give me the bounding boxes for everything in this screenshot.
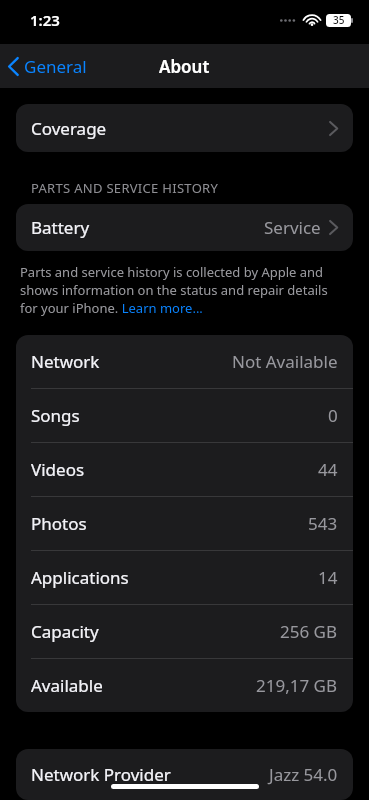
button[interactable]: Available: [16, 659, 353, 712]
staticText: 256 GB: [280, 620, 338, 643]
staticText: General: [24, 55, 87, 78]
button[interactable]: General: [0, 44, 95, 88]
button[interactable]: Network Provider: [16, 749, 353, 800]
staticText: Available: [31, 674, 103, 697]
staticText: About: [159, 55, 210, 78]
staticText: 0: [328, 404, 338, 427]
button[interactable]: Applications: [16, 551, 353, 604]
button[interactable]: Photos: [16, 497, 353, 550]
staticText: 543: [308, 512, 338, 535]
staticText: Capacity: [31, 620, 99, 643]
staticText: 35: [333, 13, 345, 27]
button[interactable]: Videos: [16, 443, 353, 496]
staticText: Photos: [31, 512, 87, 535]
staticText: 44: [318, 458, 338, 481]
staticText: Songs: [31, 404, 80, 427]
staticText: 219,17 GB: [256, 674, 338, 697]
button[interactable]: Coverage: [16, 104, 353, 152]
staticText: Parts and service history is collected b…: [20, 263, 347, 317]
button[interactable]: Capacity: [16, 605, 353, 658]
button[interactable]: Battery: [16, 204, 353, 251]
staticText: Not Available: [232, 350, 338, 373]
staticText: Videos: [31, 458, 85, 481]
staticText: 14: [318, 566, 338, 589]
staticText: PARTS AND SERVICE HISTORY: [31, 179, 219, 197]
staticText: Network Provider: [31, 763, 171, 786]
staticText: Network: [31, 350, 100, 373]
button[interactable]: Network: [16, 335, 353, 388]
staticText: Battery: [31, 216, 90, 239]
button[interactable]: Songs: [16, 389, 353, 442]
staticText: Service: [264, 216, 321, 239]
staticText: Applications: [31, 566, 129, 589]
staticText: Jazz 54.0: [269, 763, 338, 786]
staticText: Coverage: [31, 117, 107, 140]
staticText: 1:23: [30, 10, 60, 30]
